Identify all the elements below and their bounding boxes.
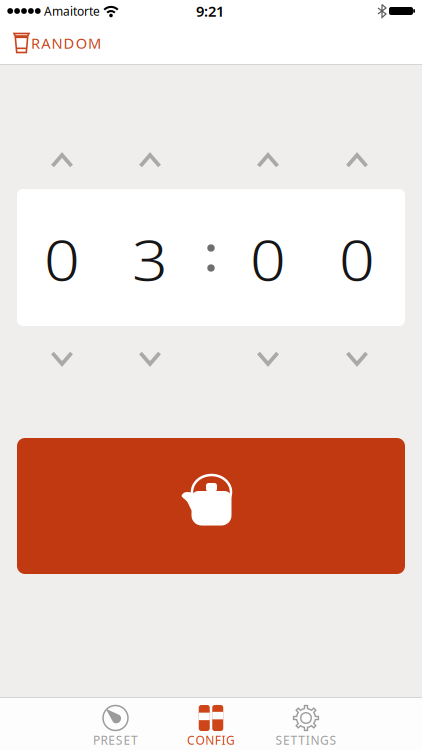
staticText: S: [330, 732, 337, 748]
button[interactable]: Increase: [134, 149, 165, 172]
staticText: E: [108, 732, 115, 748]
staticText: E: [283, 732, 290, 748]
staticText: I: [221, 732, 225, 748]
staticText: M: [88, 33, 101, 53]
staticText: R: [31, 33, 40, 53]
staticText: A: [41, 33, 50, 53]
staticText: O: [196, 732, 205, 748]
staticText: N: [205, 732, 214, 748]
button[interactable]: Decrease: [46, 347, 77, 370]
staticText: S: [116, 732, 123, 748]
staticText: I: [306, 732, 310, 748]
staticText: T: [291, 732, 298, 748]
staticText: N: [51, 33, 62, 53]
staticText: D: [64, 33, 75, 53]
staticText: G: [226, 732, 235, 748]
staticText: T: [131, 732, 138, 748]
staticText: S: [275, 732, 282, 748]
staticText: F: [215, 732, 221, 748]
staticText: C: [187, 732, 195, 748]
staticText: 0: [341, 222, 373, 296]
staticText: 3: [134, 222, 166, 296]
staticText: 0: [252, 222, 284, 296]
staticText: P: [93, 732, 100, 748]
staticText: O: [76, 33, 87, 53]
staticText: E: [123, 732, 130, 748]
staticText: 9:21: [196, 1, 224, 21]
button[interactable]: S: [261, 699, 351, 750]
button[interactable]: P: [70, 699, 160, 750]
button[interactable]: Start timer: [17, 438, 405, 574]
button[interactable]: Decrease: [134, 347, 165, 370]
staticText: R: [101, 732, 108, 748]
button[interactable]: Decrease: [252, 347, 283, 370]
button[interactable]: Decrease: [341, 347, 372, 370]
staticText: Amaitorte: [44, 3, 100, 19]
button[interactable]: Increase: [252, 149, 283, 172]
button[interactable]: Increase: [46, 149, 77, 172]
button[interactable]: R: [13, 28, 109, 58]
staticText: G: [320, 732, 329, 748]
staticText: 0: [46, 222, 78, 296]
staticText: N: [310, 732, 319, 748]
button[interactable]: Increase: [341, 149, 372, 172]
button[interactable]: C: [166, 699, 256, 750]
staticText: T: [298, 732, 305, 748]
